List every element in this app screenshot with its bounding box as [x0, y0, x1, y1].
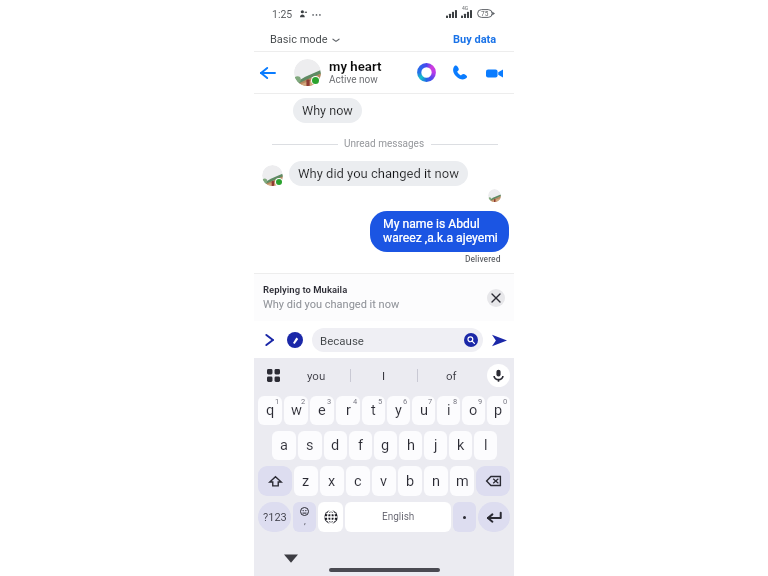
button[interactable]: d — [324, 431, 347, 460]
staticText: g — [381, 437, 390, 454]
button[interactable]: Call — [447, 60, 473, 86]
button[interactable]: My name is Abdul wareez ,a.k.a ajeyemi — [370, 211, 509, 252]
button[interactable]: e — [310, 396, 334, 425]
button[interactable]: t — [362, 396, 385, 425]
button[interactable]: , — [293, 502, 316, 532]
staticText: Because — [320, 334, 464, 347]
other: Enter — [486, 511, 502, 524]
button[interactable]: Meta AI — [413, 59, 440, 86]
staticText: m — [456, 473, 469, 490]
staticText: p — [494, 402, 503, 419]
button[interactable]: Sticker — [287, 332, 303, 348]
button[interactable]: Why did you changed it now — [289, 161, 468, 186]
staticText: x — [328, 473, 336, 490]
staticText: n — [432, 473, 441, 490]
button[interactable]: o — [462, 396, 485, 425]
button[interactable] — [453, 502, 476, 532]
staticText: a — [280, 437, 288, 454]
button[interactable]: p — [487, 396, 510, 425]
button[interactable]: Expand actions — [260, 331, 278, 349]
button[interactable]: q — [258, 396, 282, 425]
staticText: of — [446, 369, 457, 382]
other: Backspace — [486, 475, 501, 487]
staticText: r — [346, 402, 351, 419]
button[interactable]: j — [424, 431, 447, 460]
button[interactable]: Toolbar — [264, 366, 283, 385]
staticText: 1 — [275, 397, 280, 406]
staticText: 6 — [403, 397, 408, 406]
staticText: y — [395, 402, 402, 419]
button[interactable]: you — [283, 358, 350, 393]
staticText: d — [331, 437, 340, 454]
button[interactable]: Send — [489, 330, 509, 350]
button[interactable]: r — [336, 396, 360, 425]
button[interactable]: ?123 — [258, 502, 291, 532]
button[interactable]: x — [320, 466, 344, 496]
button[interactable]: a — [272, 431, 296, 460]
button[interactable]: Search — [464, 333, 478, 347]
staticText: t — [371, 402, 376, 419]
button[interactable]: z — [294, 466, 318, 496]
button[interactable]: of — [418, 358, 484, 393]
button[interactable]: Basic mode — [270, 33, 340, 46]
button[interactable]: English — [345, 502, 451, 532]
button[interactable]: k — [449, 431, 472, 460]
staticText: 9 — [478, 397, 483, 406]
button[interactable]: Because — [312, 328, 483, 352]
staticText: v — [380, 473, 388, 490]
button[interactable]: Why now — [293, 98, 362, 123]
button[interactable]: Back — [254, 52, 281, 93]
staticText: 3 — [327, 397, 332, 406]
button[interactable]: i — [437, 396, 460, 425]
button[interactable]: b — [398, 466, 422, 496]
staticText: 8 — [453, 397, 458, 406]
staticText: 2 — [301, 397, 306, 406]
button[interactable]: f — [349, 431, 372, 460]
staticText: My name is Abdul wareez ,a.k.a ajeyemi — [383, 217, 498, 245]
staticText: i — [447, 402, 451, 419]
button[interactable]: Buy data — [453, 33, 497, 46]
staticText: 1:25 — [272, 8, 293, 20]
button[interactable]: g — [374, 431, 397, 460]
staticText: Why did you changed it now — [298, 166, 459, 181]
staticText: Why now — [302, 103, 353, 118]
button[interactable]: h — [399, 431, 422, 460]
button[interactable]: Enter — [478, 502, 510, 532]
button[interactable]: n — [424, 466, 448, 496]
staticText: Basic mode — [270, 33, 328, 46]
button[interactable]: Shift — [258, 466, 292, 496]
button[interactable]: y — [387, 396, 410, 425]
staticText: Active now — [329, 74, 378, 86]
button[interactable]: l — [474, 431, 497, 460]
staticText: 7 — [428, 397, 433, 406]
button[interactable]: Cancel reply — [487, 289, 505, 307]
staticText: 4G — [462, 5, 469, 11]
button[interactable]: Change language — [318, 502, 343, 532]
staticText: 0 — [503, 397, 508, 406]
button[interactable]: Voice input — [487, 364, 510, 387]
button[interactable]: s — [298, 431, 322, 460]
other: Shift — [269, 475, 282, 488]
staticText: Why did you changed it now — [263, 298, 400, 311]
button[interactable]: w — [284, 396, 308, 425]
staticText: Replying to Mukaila — [263, 284, 348, 295]
staticText: z — [302, 473, 310, 490]
button[interactable]: m — [450, 466, 474, 496]
staticText: f — [358, 437, 364, 454]
staticText: Buy data — [453, 33, 497, 46]
button[interactable]: Video call — [481, 60, 507, 86]
staticText: h — [407, 437, 415, 454]
button[interactable]: c — [346, 466, 370, 496]
staticText: e — [318, 402, 326, 419]
staticText: I — [382, 369, 386, 382]
staticText: 4 — [353, 397, 358, 406]
staticText: Delivered — [465, 254, 501, 264]
staticText: l — [484, 437, 488, 454]
staticText: you — [307, 369, 326, 382]
button[interactable]: I — [351, 358, 417, 393]
button[interactable]: Hide keyboard — [282, 549, 300, 567]
button[interactable]: v — [372, 466, 396, 496]
button[interactable]: Backspace — [476, 466, 510, 496]
button[interactable]: u — [412, 396, 435, 425]
staticText: u — [420, 402, 428, 419]
